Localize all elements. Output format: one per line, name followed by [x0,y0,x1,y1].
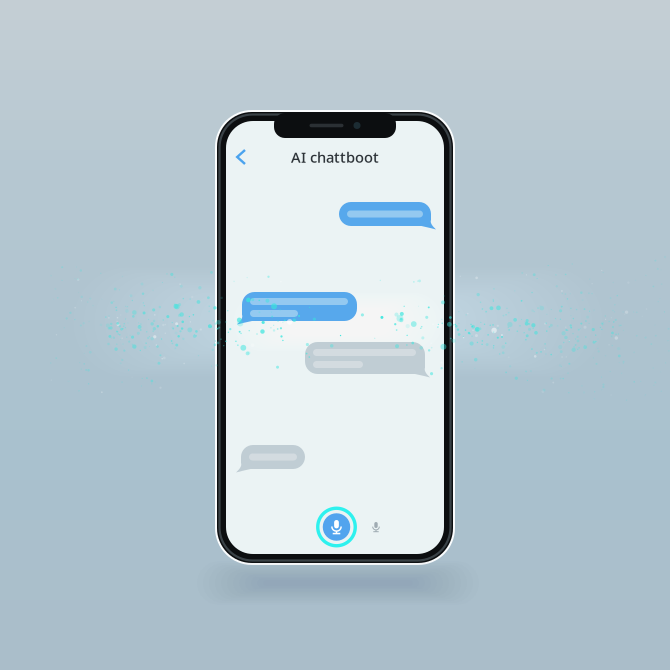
staticText: AI chattboot [291,147,379,167]
button[interactable]: Start voice input [312,503,360,551]
button[interactable]: Back [226,140,255,174]
button[interactable]: Microphone [365,516,387,538]
